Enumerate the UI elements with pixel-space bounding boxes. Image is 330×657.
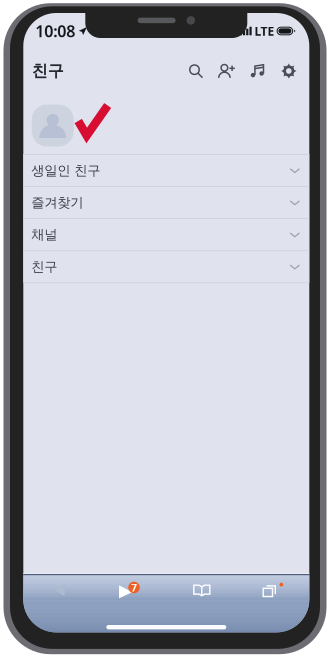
button[interactable]: Add friend <box>211 54 242 88</box>
button[interactable]: Tabs <box>237 579 308 601</box>
staticText: 7 <box>131 580 137 595</box>
staticText: 친구 <box>31 259 57 275</box>
button[interactable]: Search <box>180 54 211 88</box>
staticText: 10:08 <box>35 20 75 42</box>
staticText: LTE <box>254 23 274 39</box>
button[interactable]: Music <box>242 54 273 88</box>
staticText: 생일인 친구 <box>31 162 100 179</box>
staticText: 즐겨찾기 <box>31 194 83 211</box>
button[interactable]: Forward <box>95 579 166 601</box>
button[interactable]: Back <box>24 579 95 601</box>
button[interactable]: 채널 <box>23 218 309 250</box>
staticText: 채널 <box>31 226 57 243</box>
button[interactable]: Settings <box>273 54 304 88</box>
button[interactable]: Bookmarks <box>166 579 237 601</box>
button[interactable]: 생일인 친구 <box>23 154 309 186</box>
button[interactable]: 즐겨찾기 <box>23 186 309 218</box>
button[interactable]: 친구 <box>23 250 309 282</box>
staticText: 친구 <box>32 61 64 81</box>
